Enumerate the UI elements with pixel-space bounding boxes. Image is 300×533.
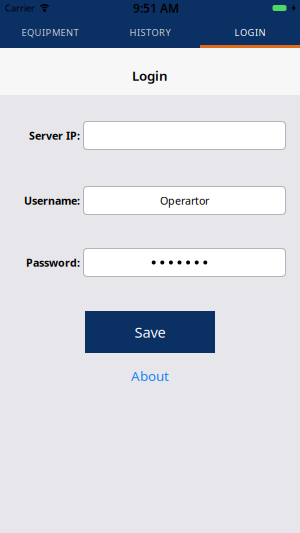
button[interactable]: HISTORY: [100, 20, 200, 48]
button[interactable]: Save: [85, 311, 215, 353]
staticText: About: [131, 367, 169, 385]
staticText: EQUIPMENT: [21, 26, 78, 39]
staticText: Login: [132, 67, 168, 84]
staticText: Carrier: [5, 2, 35, 14]
button[interactable]: EQUIPMENT: [0, 20, 100, 48]
button[interactable]: About: [131, 367, 169, 385]
staticText: HISTORY: [129, 26, 170, 39]
button[interactable]: LOGIN: [200, 20, 300, 48]
staticText: LOGIN: [234, 26, 265, 39]
staticText: Server IP:: [29, 128, 80, 143]
staticText: Save: [134, 322, 165, 342]
staticText: Username:: [24, 193, 80, 208]
staticText: Operartor: [160, 193, 209, 208]
staticText: Password:: [26, 255, 80, 270]
staticText: 9:51 AM: [133, 0, 179, 16]
